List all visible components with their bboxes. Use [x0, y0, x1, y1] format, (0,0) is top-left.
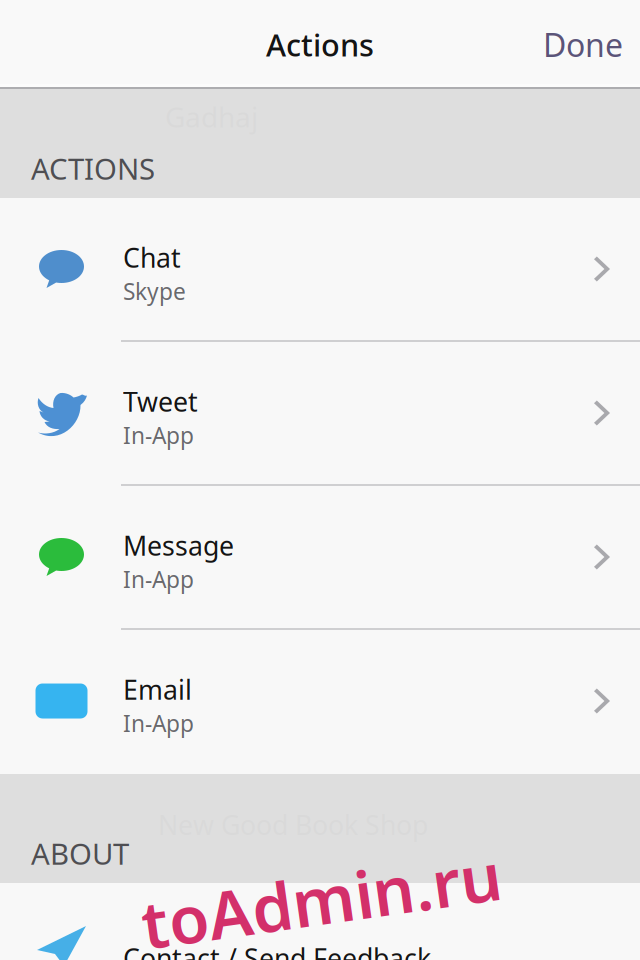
button[interactable]: Done — [519, 11, 640, 78]
staticText: Tweet — [123, 384, 198, 419]
staticText: Done — [543, 23, 623, 66]
button[interactable]: Email — [0, 630, 640, 772]
staticText: Skype — [123, 276, 186, 306]
button[interactable]: Tweet — [0, 342, 640, 484]
staticText: In-App — [123, 420, 194, 450]
button[interactable]: Chat — [0, 198, 640, 340]
staticText: Email — [123, 672, 192, 707]
staticText: toAdmin.ru — [140, 856, 503, 943]
staticText: Contact / Send Feedback — [123, 940, 431, 960]
staticText: Chat — [123, 240, 181, 275]
staticText: Actions — [266, 24, 374, 65]
staticText: Message — [123, 528, 234, 563]
button[interactable]: Message — [0, 486, 640, 628]
staticText: In-App — [123, 708, 194, 738]
staticText: ABOUT — [31, 834, 129, 873]
button[interactable]: Contact / Send Feedback — [0, 883, 640, 960]
staticText: ACTIONS — [31, 149, 155, 188]
staticText: In-App — [123, 564, 194, 594]
